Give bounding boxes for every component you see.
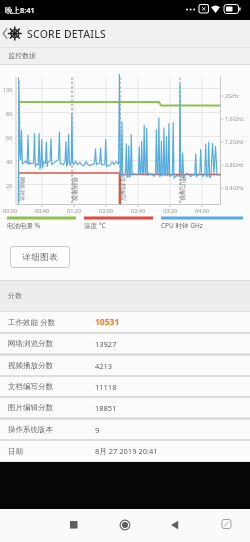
staticText: 10531 (95, 316, 120, 328)
staticText: 图片编辑分数 (8, 403, 53, 412)
staticText: 网络浏览 (18, 177, 26, 201)
staticText: SCORE DETAILS (27, 27, 106, 41)
staticText: 工作效能 分数 (8, 317, 55, 327)
staticText: 文档编写分数 (8, 382, 53, 391)
button[interactable]: 详细图表 (10, 246, 70, 268)
button[interactable]: 文档编写分数 (0, 377, 250, 396)
staticText: 04:00 (195, 207, 210, 214)
button[interactable]: 视频播放分数 (0, 356, 250, 375)
staticText: 100 (3, 86, 13, 93)
button[interactable]: 网络浏览分数 (0, 334, 250, 353)
staticText: 00:40 (35, 207, 50, 214)
staticText: 图片编辑 (179, 177, 187, 201)
staticText: 18851 (95, 403, 117, 413)
staticText: 文档编写 (119, 177, 127, 201)
button[interactable]: 工作效能 分数 (0, 312, 250, 332)
button[interactable] (0, 20, 250, 47)
button[interactable] (210, 509, 245, 542)
staticText: 1.6GHz (225, 115, 244, 122)
staticText: CPU 时钟 GHz (161, 221, 203, 230)
button[interactable] (155, 509, 195, 542)
staticText: 01:20 (67, 207, 82, 214)
button[interactable]: 图片编辑分数 (0, 398, 250, 417)
staticText: 13927 (95, 339, 117, 349)
staticText: 8月 27 2019 20:41 (95, 446, 158, 456)
staticText: 02:40 (131, 207, 146, 214)
staticText: 晚上8:41 (5, 5, 35, 15)
staticText: 11118 (95, 382, 117, 392)
staticText: 分数 (8, 291, 22, 300)
staticText: 40 (6, 158, 13, 165)
staticText: 02:00 (99, 207, 114, 214)
staticText: 温度 °C (84, 221, 106, 230)
staticText: 2GHz (225, 92, 239, 99)
staticText: 0.4GHz (225, 184, 244, 191)
staticText: 20 (6, 182, 13, 189)
button[interactable] (105, 509, 145, 542)
staticText: 操作系统版本 (8, 425, 53, 434)
staticText: 0.8GHz (225, 161, 244, 168)
button[interactable]: 操作系统版本 (0, 420, 250, 439)
staticText: 视频播放分数 (8, 361, 53, 370)
staticText: 60 (6, 134, 13, 141)
staticText: 网络浏览分数 (8, 339, 53, 348)
staticText: 00:00 (3, 207, 18, 214)
staticText: 03:20 (163, 207, 178, 214)
staticText: 80 (6, 110, 13, 117)
button[interactable]: 日期 (0, 441, 250, 461)
staticText: 详细图表 (22, 252, 58, 263)
staticText: 日期 (8, 447, 23, 456)
button[interactable] (55, 509, 95, 542)
staticText: 4213 (95, 361, 113, 371)
staticText: 1.2GHz (225, 138, 244, 145)
staticText: 监控数据 (8, 51, 36, 60)
staticText: 9 (95, 425, 100, 435)
staticText: 电池电量 % (7, 221, 41, 230)
staticText: 视频播放 (71, 177, 79, 201)
